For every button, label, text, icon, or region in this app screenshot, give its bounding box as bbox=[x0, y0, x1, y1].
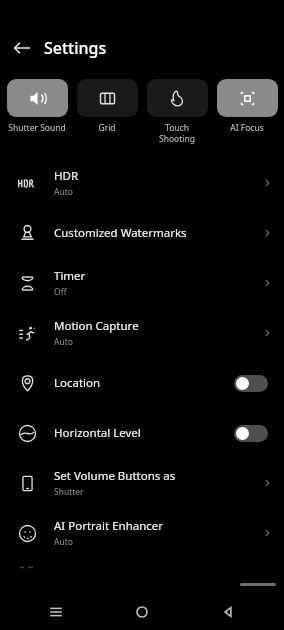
button[interactable]: Customized Watermarks bbox=[0, 208, 284, 258]
button[interactable]: Set Volume Buttons as bbox=[0, 458, 284, 508]
button[interactable]: Shutter Sound bbox=[4, 79, 70, 134]
staticText: Motion Capture bbox=[54, 318, 139, 334]
staticText: AI Portrait Enhancer bbox=[54, 518, 164, 534]
staticText: Customized Watermarks bbox=[54, 225, 187, 241]
staticText: Settings bbox=[44, 37, 107, 59]
staticText: Off bbox=[54, 286, 67, 298]
button[interactable]: HDR bbox=[0, 158, 284, 208]
button[interactable]: Location bbox=[0, 358, 284, 408]
staticText: Horizontal Level bbox=[54, 425, 234, 441]
button[interactable]: Motion Capture bbox=[0, 308, 284, 358]
button[interactable]: AI Portrait Enhancer bbox=[0, 508, 284, 558]
staticText: Set Volume Buttons as bbox=[54, 468, 176, 484]
staticText: Timer bbox=[54, 268, 86, 284]
staticText: Shutter bbox=[54, 486, 84, 498]
staticText: Touch Shooting bbox=[159, 122, 195, 144]
button[interactable]: Touch Shooting bbox=[144, 79, 210, 144]
button[interactable]: Back bbox=[0, 26, 44, 70]
staticText: Auto bbox=[54, 536, 73, 548]
staticText: Auto bbox=[54, 186, 73, 198]
staticText: HDR bbox=[54, 168, 79, 184]
staticText: Grid bbox=[98, 122, 116, 134]
staticText: Shutter Sound bbox=[8, 122, 66, 134]
button[interactable]: AI Focus bbox=[214, 79, 280, 134]
staticText: AI Focus bbox=[230, 122, 264, 134]
button[interactable]: Timer bbox=[0, 258, 284, 308]
staticText: Location bbox=[54, 375, 234, 391]
button[interactable]: Home bbox=[112, 594, 172, 630]
button[interactable]: Horizontal Level bbox=[0, 408, 284, 458]
staticText: Auto bbox=[54, 336, 73, 348]
button[interactable]: Recents bbox=[26, 594, 86, 630]
button[interactable]: Back bbox=[198, 594, 258, 630]
button[interactable]: Grid bbox=[74, 79, 140, 134]
